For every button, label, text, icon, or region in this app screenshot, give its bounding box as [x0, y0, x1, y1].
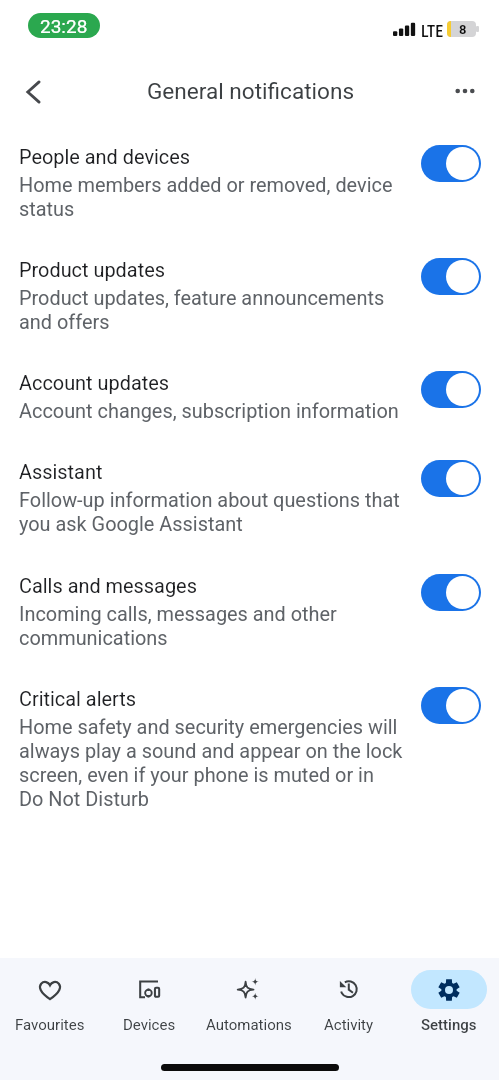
staticText: Incoming calls, messages and other [19, 603, 337, 626]
staticText: communications [19, 627, 168, 650]
staticText: Product updates [19, 259, 165, 282]
button[interactable]: Product updates toggle, on [421, 258, 481, 295]
button[interactable]: People and devices toggle, on [421, 145, 481, 182]
button[interactable]: Activity [299, 958, 399, 1042]
staticText: Critical alerts [19, 688, 137, 711]
button[interactable]: Account updates toggle, on [421, 371, 481, 408]
staticText: People and devices [19, 146, 191, 169]
staticText: Account updates [19, 372, 170, 395]
staticText: 8 [459, 22, 467, 37]
staticText: Follow-up information about questions th… [19, 489, 400, 512]
staticText: Home safety and security emergencies wil… [19, 716, 398, 739]
button[interactable]: Assistant [0, 458, 499, 552]
button[interactable]: Assistant toggle, on [421, 460, 481, 497]
staticText: and offers [19, 311, 110, 334]
button[interactable]: Calls and messages [0, 572, 499, 666]
staticText: LTE [421, 22, 444, 41]
staticText: status [19, 198, 75, 221]
staticText: 23:28 [40, 15, 88, 37]
button[interactable]: Automations [199, 958, 299, 1042]
staticText: General notifications [1, 78, 499, 104]
button[interactable]: Favourites [0, 958, 99, 1042]
button[interactable]: More options [441, 67, 489, 115]
staticText: Home members added or removed, device [19, 174, 393, 197]
button[interactable]: Critical alerts toggle, on [421, 687, 481, 724]
staticText: always play a sound and appear on the lo… [19, 740, 403, 763]
button[interactable]: Calls and messages toggle, on [421, 574, 481, 611]
staticText: Favourites [15, 1016, 85, 1034]
staticText: Product updates, feature announcements [19, 287, 385, 310]
button[interactable]: Product updates [0, 256, 499, 350]
staticText: Activity [324, 1016, 374, 1034]
staticText: Automations [206, 1016, 292, 1034]
staticText: Calls and messages [19, 575, 197, 598]
staticText: Devices [123, 1016, 176, 1034]
button[interactable]: Critical alerts [0, 685, 499, 827]
staticText: Settings [421, 1016, 477, 1034]
button[interactable]: Settings [399, 958, 499, 1042]
staticText: Account changes, subscription informatio… [19, 400, 399, 423]
button[interactable]: Account updates [0, 369, 499, 439]
staticText: Do Not Disturb [19, 788, 149, 811]
staticText: Assistant [19, 461, 103, 484]
button[interactable]: People and devices [0, 143, 499, 237]
button[interactable]: Devices [99, 958, 199, 1042]
staticText: screen, even if your phone is muted or i… [19, 764, 374, 787]
staticText: you ask Google Assistant [19, 513, 243, 536]
button[interactable]: Back [9, 68, 57, 116]
